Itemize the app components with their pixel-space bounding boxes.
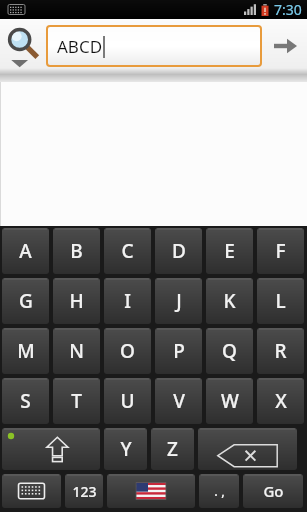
button[interactable]: . , xyxy=(199,474,239,508)
staticText: E xyxy=(224,238,235,264)
button[interactable]: 123 xyxy=(65,474,103,508)
button[interactable]: C xyxy=(104,228,151,274)
staticText: . , xyxy=(214,482,225,500)
staticText: Q xyxy=(222,338,237,364)
button[interactable]: G xyxy=(2,278,49,324)
staticText: Y xyxy=(120,436,132,462)
staticText: H xyxy=(69,288,84,314)
staticText: A xyxy=(19,238,32,264)
button[interactable]: D xyxy=(155,228,202,274)
staticText: 7:30 xyxy=(274,0,302,19)
button[interactable]: O xyxy=(104,328,151,374)
button[interactable]: Search engine xyxy=(0,19,46,72)
button[interactable]: M xyxy=(2,328,49,374)
button[interactable]: Z xyxy=(151,428,194,470)
staticText: B xyxy=(70,238,83,264)
staticText: P xyxy=(173,338,185,364)
staticText: 123 xyxy=(72,482,97,501)
button[interactable]: X xyxy=(257,378,304,424)
button[interactable]: U xyxy=(104,378,151,424)
button[interactable]: Switch keyboard xyxy=(2,474,61,508)
button[interactable]: V xyxy=(155,378,202,424)
button[interactable]: N xyxy=(53,328,100,374)
staticText: T xyxy=(71,388,82,414)
button[interactable]: L xyxy=(257,278,304,324)
button[interactable]: Delete xyxy=(198,428,297,470)
staticText: V xyxy=(173,388,185,414)
button[interactable]: Search xyxy=(262,19,307,72)
staticText: U xyxy=(120,388,135,414)
staticText: N xyxy=(69,338,84,364)
button[interactable]: F xyxy=(257,228,304,274)
button[interactable]: S xyxy=(2,378,49,424)
button[interactable]: I xyxy=(104,278,151,324)
staticText: I xyxy=(124,288,131,314)
staticText: S xyxy=(20,388,31,414)
staticText: K xyxy=(223,288,236,314)
staticText: Z xyxy=(167,436,178,462)
button[interactable]: R xyxy=(257,328,304,374)
button[interactable]: Space xyxy=(107,474,195,508)
staticText: J xyxy=(176,288,182,314)
staticText: F xyxy=(275,238,286,264)
staticText: R xyxy=(274,338,287,364)
button[interactable]: P xyxy=(155,328,202,374)
button[interactable]: Go xyxy=(243,474,303,508)
button[interactable]: E xyxy=(206,228,253,274)
button[interactable]: W xyxy=(206,378,253,424)
button[interactable]: A xyxy=(2,228,49,274)
button[interactable]: B xyxy=(53,228,100,274)
button[interactable]: K xyxy=(206,278,253,324)
staticText: O xyxy=(120,338,135,364)
button[interactable]: Shift xyxy=(2,428,100,470)
button[interactable]: H xyxy=(53,278,100,324)
button[interactable]: Q xyxy=(206,328,253,374)
staticText: L xyxy=(275,288,286,314)
staticText: W xyxy=(221,388,239,414)
staticText: C xyxy=(121,238,134,264)
button[interactable]: J xyxy=(155,278,202,324)
button[interactable]: Y xyxy=(104,428,147,470)
staticText: D xyxy=(172,238,186,264)
staticText: ABCD xyxy=(57,35,103,58)
staticText: M xyxy=(17,338,35,364)
staticText: Go xyxy=(263,481,284,501)
button[interactable]: T xyxy=(53,378,100,424)
button[interactable]: ABCD xyxy=(48,27,260,65)
staticText: X xyxy=(275,388,287,414)
staticText: G xyxy=(19,288,33,314)
